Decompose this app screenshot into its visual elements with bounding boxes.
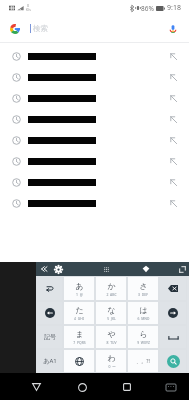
button[interactable] [160, 277, 186, 300]
button[interactable] [0, 67, 189, 88]
button[interactable]: 検索 [30, 15, 157, 42]
button[interactable]: か [96, 277, 126, 300]
staticText: K/s [26, 8, 31, 12]
button[interactable] [0, 172, 189, 193]
button[interactable]: あ [64, 277, 94, 300]
staticText: 記号 [44, 333, 56, 341]
staticText: 、。?! [136, 358, 150, 365]
staticText: や [107, 329, 116, 339]
button[interactable]: Back [24, 375, 48, 399]
staticText: た [75, 305, 84, 315]
button[interactable]: 、。?! [128, 350, 158, 372]
button[interactable]: た [64, 302, 94, 324]
button[interactable]: あA1 [37, 350, 62, 372]
button[interactable] [0, 109, 189, 130]
button[interactable]: ら [128, 326, 158, 348]
staticText: 9 WXYZ [137, 340, 150, 345]
button[interactable] [0, 130, 189, 151]
button[interactable] [0, 151, 189, 172]
staticText: 7 PQRS [73, 340, 86, 345]
button[interactable]: Collapse [38, 263, 50, 275]
button[interactable]: Settings [52, 263, 64, 275]
button[interactable] [0, 193, 189, 214]
button[interactable]: 記号 [37, 326, 62, 348]
button[interactable]: Google [0, 15, 30, 42]
staticText: さ [139, 281, 148, 291]
button[interactable] [37, 302, 62, 324]
staticText: 9:18 [167, 3, 181, 13]
staticText: 2 ABC [106, 292, 117, 297]
button[interactable]: Home [70, 375, 94, 399]
button[interactable]: Switch keyboard [160, 376, 182, 398]
button[interactable]: な [96, 302, 126, 324]
staticText: 5 JKL [107, 316, 116, 321]
staticText: 0 [27, 3, 30, 8]
button[interactable]: Themes [140, 263, 152, 275]
button[interactable]: や [96, 326, 126, 348]
button[interactable]: ま [64, 326, 94, 348]
button[interactable] [160, 302, 186, 324]
staticText: ま [75, 329, 84, 339]
staticText: わ [107, 353, 116, 363]
button[interactable]: Recents [115, 375, 139, 399]
button[interactable] [160, 350, 186, 372]
staticText: ら [139, 329, 148, 339]
button[interactable]: Resize keyboard [176, 263, 188, 275]
staticText: あ [75, 281, 84, 291]
button[interactable] [160, 326, 186, 348]
staticText: 3 DEF [138, 292, 148, 297]
staticText: 1 @ [76, 292, 83, 297]
button[interactable] [0, 46, 189, 67]
button[interactable] [0, 88, 189, 109]
staticText: 検索 [33, 24, 48, 33]
button[interactable]: わ [96, 350, 126, 372]
staticText: 86% [141, 4, 154, 13]
button[interactable] [37, 277, 62, 300]
button[interactable]: Clipboard [100, 263, 112, 275]
staticText: あA1 [43, 357, 57, 365]
staticText: 4 GHI [74, 316, 84, 321]
staticText: 0 〜 [108, 364, 116, 369]
button[interactable]: は [128, 302, 158, 324]
staticText: 8 TUV [106, 340, 117, 345]
button[interactable]: さ [128, 277, 158, 300]
button[interactable]: Voice search [157, 15, 189, 42]
staticText: か [107, 281, 116, 291]
button[interactable] [64, 350, 94, 372]
staticText: は [139, 305, 148, 315]
staticText: な [107, 305, 116, 315]
staticText: 6 MNO [137, 316, 150, 321]
